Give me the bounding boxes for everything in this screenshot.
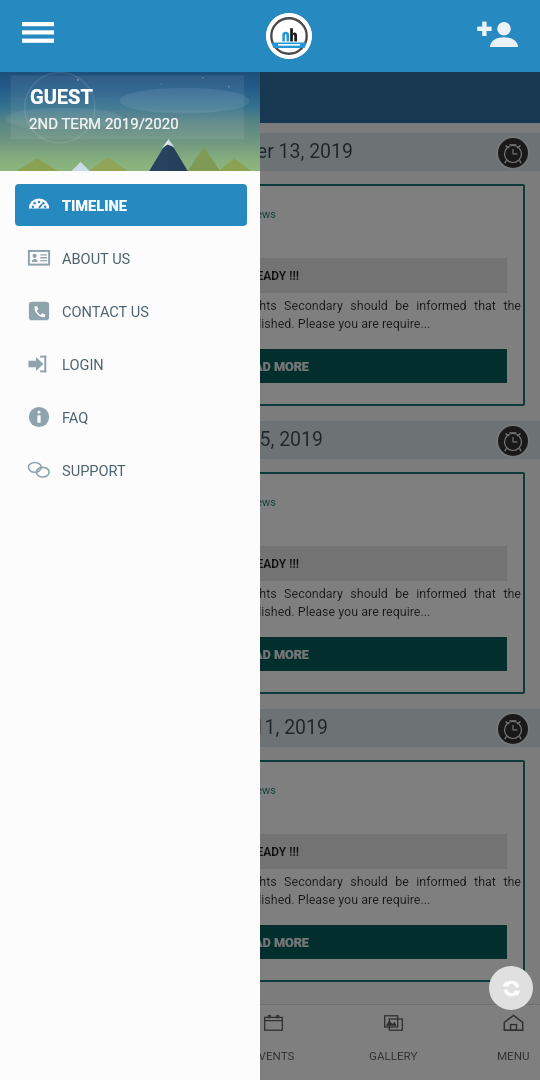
staticText: READ MORE	[15, 359, 309, 374]
staticText: 2ND TERM 2019/2020	[29, 115, 179, 133]
staticText: News	[15, 784, 276, 797]
button[interactable]: READ MORE	[33, 349, 507, 383]
staticText: READ MORE	[15, 647, 309, 662]
staticText: MENU	[497, 1049, 530, 1063]
button[interactable]: TIMELINE	[15, 184, 247, 226]
staticText: November 25, 2019	[0, 428, 323, 451]
button[interactable]: Reminder	[496, 712, 530, 746]
staticText: SUPPORT	[62, 462, 126, 479]
button[interactable]: EVENTS	[223, 1004, 323, 1080]
button[interactable]: READ MORE	[33, 637, 507, 671]
button[interactable]: MENU	[463, 1004, 540, 1080]
button[interactable]: GALLERY	[343, 1004, 443, 1080]
staticText: News	[15, 208, 276, 221]
button[interactable]: News	[15, 184, 525, 406]
staticText: CONTACT US	[62, 303, 149, 320]
staticText: All students of Heights Secondary should…	[137, 586, 521, 619]
staticText: October 11, 2019	[0, 716, 328, 739]
staticText: GALLERY	[369, 1049, 418, 1063]
button[interactable]: Reminder	[496, 424, 530, 458]
staticText: All students of Heights Secondary should…	[137, 298, 521, 331]
button[interactable]: News	[15, 760, 525, 982]
staticText: December 13, 2019	[0, 140, 353, 163]
button[interactable]: October 11, 2019	[0, 709, 540, 747]
staticText: EVENTS	[252, 1049, 295, 1063]
staticText: All students of Heights Secondary should…	[137, 874, 521, 907]
button[interactable]: LOGIN	[15, 343, 247, 385]
button[interactable]: News	[15, 472, 525, 694]
button[interactable]: Add person	[475, 12, 519, 56]
staticText: RESULT IS READY !!!	[15, 269, 299, 283]
staticText: News	[15, 496, 276, 509]
staticText: LOGIN	[62, 356, 104, 373]
button[interactable]: December 13, 2019	[0, 133, 540, 171]
staticText: FAQ	[62, 409, 89, 426]
button[interactable]: School logo	[266, 13, 312, 59]
staticText: READ MORE	[15, 935, 309, 950]
staticText: TIMELINE	[62, 197, 127, 214]
staticText: RESULT IS READY !!!	[15, 557, 299, 571]
button[interactable]: CONTACT US	[15, 290, 247, 332]
button[interactable]: Reminder	[496, 136, 530, 170]
button[interactable]: November 25, 2019	[0, 421, 540, 459]
button[interactable]: SUPPORT	[15, 449, 247, 491]
staticText: RESULT IS READY !!!	[15, 845, 299, 859]
button[interactable]: Open navigation drawer	[10, 8, 66, 64]
button[interactable]: FAQ	[15, 396, 247, 438]
staticText: ABOUT US	[62, 250, 131, 267]
button[interactable]: Refresh	[489, 966, 533, 1010]
button[interactable]: ABOUT US	[15, 237, 247, 279]
button[interactable]: READ MORE	[33, 925, 507, 959]
staticText: GUEST	[30, 85, 93, 108]
